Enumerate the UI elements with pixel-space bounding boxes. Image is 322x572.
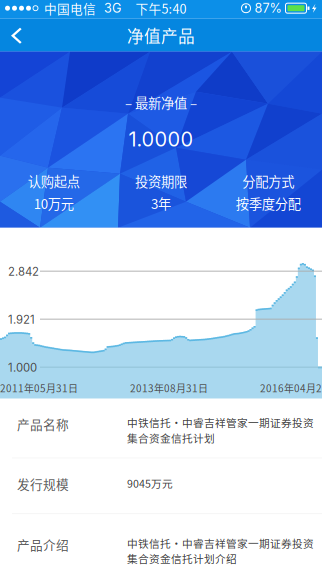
staticText: 发行规模 — [17, 474, 69, 493]
staticText: 2013年08月31日 — [130, 381, 208, 395]
staticText: 87% — [254, 0, 281, 16]
staticText: 按季度分配 — [236, 193, 301, 213]
staticText: 认购起点 — [28, 171, 80, 190]
staticText: 1.921 — [8, 313, 35, 326]
staticText: 中铁信托·中睿吉祥管家一期证券投资 集合资金信托计划 — [127, 415, 314, 446]
staticText: 产品介绍 — [17, 535, 69, 554]
staticText: 投资期限 — [135, 171, 187, 190]
button[interactable]: 发行规模 — [0, 458, 322, 513]
staticText: – 最新净值 – — [125, 93, 197, 112]
staticText: 2011年05月31日 — [0, 381, 78, 395]
staticText: 1.000 — [8, 361, 37, 374]
button[interactable]: 产品介绍 — [0, 514, 322, 572]
staticText: 产品名称 — [17, 415, 69, 433]
button[interactable]: Back — [0, 19, 44, 51]
staticText: 1.0000 — [128, 127, 193, 151]
staticText: 3年 — [151, 193, 171, 213]
staticText: 中国电信 — [38, 0, 96, 17]
staticText: 10万元 — [34, 193, 74, 213]
staticText: 3G — [96, 0, 121, 16]
staticText: 中铁信托·中睿吉祥管家一期证券投资 集合资金信托计划介绍 — [127, 535, 314, 566]
staticText: 9045万元 — [127, 475, 173, 491]
staticText: 2016年04月2 — [260, 381, 322, 395]
staticText: 分配方式 — [242, 171, 294, 190]
staticText: 2.842 — [8, 265, 39, 278]
staticText: 下午5:40 — [135, 0, 186, 17]
staticText: 净值产品 — [127, 23, 195, 47]
button[interactable]: 产品名称 — [0, 399, 322, 458]
